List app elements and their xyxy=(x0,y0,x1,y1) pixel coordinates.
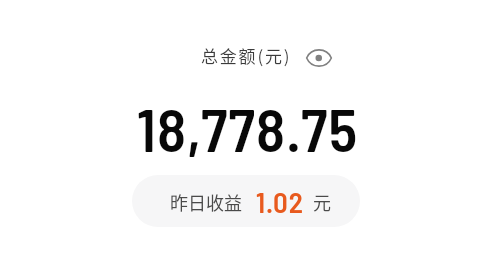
button[interactable]: 昨日收益 xyxy=(132,175,360,227)
staticText: 元 xyxy=(313,189,331,215)
staticText: 总金额(元) xyxy=(201,43,292,68)
staticText: 昨日收益 xyxy=(170,189,242,215)
button[interactable]: Toggle balance visibility xyxy=(305,44,333,72)
staticText: 18,778.75 xyxy=(137,92,359,164)
staticText: 1.02 xyxy=(256,184,305,219)
